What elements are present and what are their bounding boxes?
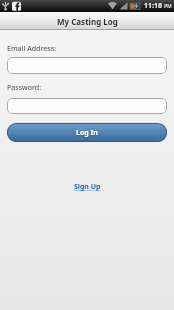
staticText: My Casting Log	[57, 16, 118, 27]
staticText: 11:16	[144, 1, 164, 11]
staticText: Log In	[76, 128, 98, 138]
staticText: Password:	[7, 83, 42, 93]
staticText: Email Address:	[7, 44, 56, 54]
button[interactable]	[7, 57, 167, 74]
staticText: Sign Up	[74, 182, 101, 192]
staticText: PM	[164, 3, 172, 10]
button[interactable]	[7, 98, 167, 114]
button[interactable]: Log In	[7, 123, 167, 142]
button[interactable]: Sign Up	[74, 182, 101, 192]
